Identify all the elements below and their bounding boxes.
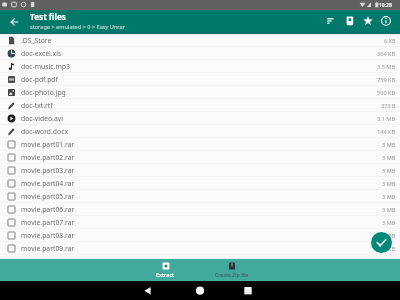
button[interactable]: movie.part07.rar xyxy=(0,216,400,229)
staticText: doc-word.docx xyxy=(21,127,69,136)
button[interactable]: doc-pdf.pdf xyxy=(0,73,400,86)
staticText: 3 MB xyxy=(382,193,396,201)
button[interactable]: Create Zip file xyxy=(204,259,260,281)
button[interactable]: .DS_Store xyxy=(0,34,400,47)
staticText: movie.part01.rar xyxy=(21,140,75,149)
staticText: 144 KB xyxy=(377,128,396,136)
button[interactable]: movie.part08.rar xyxy=(0,229,400,242)
staticText: movie.part09.rar xyxy=(21,244,75,253)
staticText: 3 MB xyxy=(382,206,396,214)
button[interactable]: movie.part04.rar xyxy=(0,177,400,190)
staticText: doc-txt.rtf xyxy=(21,101,53,110)
staticText: doc-music.mp3 xyxy=(21,62,70,71)
staticText: movie.part07.rar xyxy=(21,218,75,227)
staticText: movie.part04.rar xyxy=(21,179,75,188)
button[interactable] xyxy=(7,15,21,29)
button[interactable]: movie.part01.rar xyxy=(0,138,400,151)
staticText: 373 B xyxy=(381,102,396,110)
staticText: movie.part02.rar xyxy=(21,153,75,162)
staticText: 3 MB xyxy=(382,167,396,175)
staticText: 653 KB xyxy=(377,245,396,253)
button[interactable]: movie.part02.rar xyxy=(0,151,400,164)
staticText: 3.1 MB xyxy=(377,115,396,123)
button[interactable] xyxy=(193,286,207,300)
button[interactable]: doc-word.docx xyxy=(0,125,400,138)
staticText: 3 MB xyxy=(382,219,396,227)
button[interactable] xyxy=(343,14,357,28)
button[interactable] xyxy=(241,286,255,300)
button[interactable] xyxy=(141,286,155,300)
staticText: Extract xyxy=(156,271,175,279)
button[interactable] xyxy=(371,232,392,253)
button[interactable]: movie.part03.rar xyxy=(0,164,400,177)
staticText: 6 KB xyxy=(384,37,396,45)
staticText: movie.part05.rar xyxy=(21,192,75,201)
button[interactable] xyxy=(324,14,338,28)
staticText: movie.part03.rar xyxy=(21,166,75,175)
button[interactable] xyxy=(379,14,393,28)
button[interactable]: doc-music.mp3 xyxy=(0,60,400,73)
staticText: .DS_Store xyxy=(21,36,52,45)
button[interactable] xyxy=(361,14,375,28)
staticText: 3 MB xyxy=(382,232,396,240)
button[interactable]: movie.part06.rar xyxy=(0,203,400,216)
staticText: 3 MB xyxy=(382,154,396,162)
button[interactable]: Extract xyxy=(143,259,187,281)
button[interactable]: doc-photo.jpg xyxy=(0,86,400,99)
staticText: Test files xyxy=(30,11,66,22)
button[interactable]: doc-txt.rtf xyxy=(0,99,400,112)
staticText: doc-photo.jpg xyxy=(21,88,66,97)
staticText: movie.part06.rar xyxy=(21,205,75,214)
staticText: 3 MB xyxy=(382,180,396,188)
button[interactable]: movie.part09.rar xyxy=(0,242,400,255)
staticText: doc-video.avi xyxy=(21,114,63,123)
staticText: 3 MB xyxy=(382,141,396,149)
staticText: storage > emulated > 0 > Easy Unrar xyxy=(30,23,126,31)
staticText: 590 KB xyxy=(377,89,396,97)
button[interactable]: movie.part05.rar xyxy=(0,190,400,203)
button[interactable]: doc-video.avi xyxy=(0,112,400,125)
staticText: 364 KB xyxy=(377,50,396,58)
staticText: Create Zip file xyxy=(215,271,249,278)
staticText: 739 KB xyxy=(377,76,396,84)
staticText: doc-pdf.pdf xyxy=(21,75,58,84)
button[interactable]: doc-excel.xls xyxy=(0,47,400,60)
staticText: 10:28 xyxy=(379,2,392,9)
staticText: 3.5 MB xyxy=(377,63,396,71)
staticText: movie.part08.rar xyxy=(21,231,75,240)
staticText: doc-excel.xls xyxy=(21,49,62,58)
